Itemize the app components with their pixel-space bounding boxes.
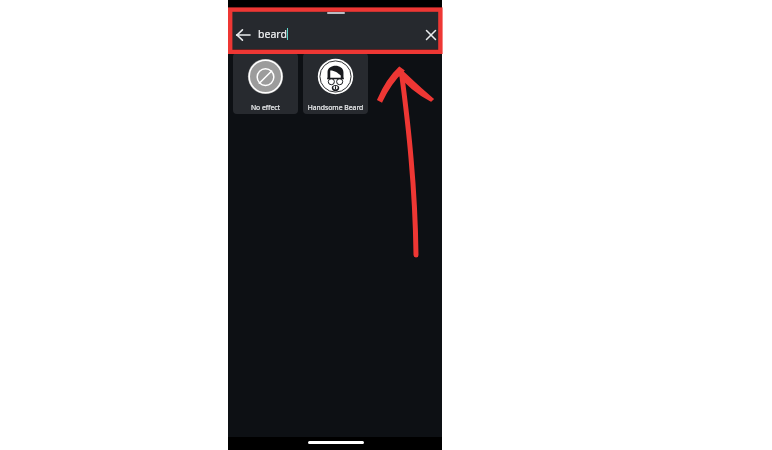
staticText: beard — [258, 27, 287, 41]
button[interactable]: No effect — [233, 53, 298, 114]
staticText: Handsome Beard — [303, 103, 368, 112]
button[interactable]: Back — [232, 24, 253, 45]
button[interactable]: Handsome Beard — [303, 53, 368, 114]
button[interactable]: Clear search — [421, 25, 440, 44]
button[interactable]: Back — [228, 9, 442, 49]
staticText: No effect — [233, 103, 298, 112]
